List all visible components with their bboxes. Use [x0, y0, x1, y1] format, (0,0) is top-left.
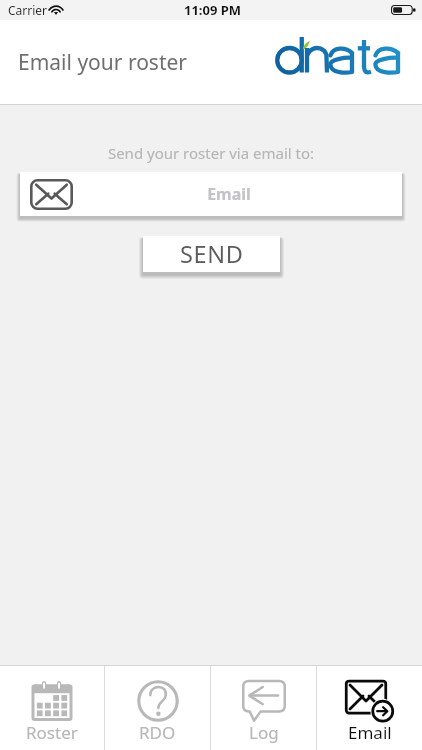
- staticText: Email: [348, 721, 392, 744]
- staticText: Email your roster: [18, 48, 188, 77]
- button[interactable]: Email: [317, 666, 422, 750]
- button[interactable]: Roster: [0, 666, 104, 750]
- button[interactable]: SEND: [143, 236, 280, 272]
- staticText: RDO: [139, 721, 176, 744]
- staticText: Email: [56, 183, 402, 205]
- staticText: SEND: [180, 238, 244, 270]
- button[interactable]: RDO: [105, 666, 210, 750]
- staticText: Carrier: [8, 2, 48, 18]
- button[interactable]: Log: [211, 666, 316, 750]
- staticText: Log: [249, 721, 279, 744]
- button[interactable]: Email: [20, 172, 402, 216]
- staticText: 11:09 PM: [184, 1, 242, 19]
- staticText: Roster: [26, 721, 78, 744]
- staticText: Send your roster via email to:: [0, 143, 422, 163]
